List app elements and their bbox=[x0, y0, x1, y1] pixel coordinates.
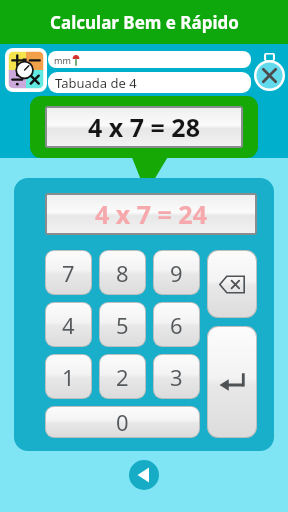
staticText: 8 bbox=[116, 258, 129, 288]
button[interactable]: 2 bbox=[100, 355, 145, 398]
button[interactable]: 1 bbox=[46, 355, 91, 398]
button[interactable]: 3 bbox=[154, 355, 199, 398]
staticText: 9 bbox=[170, 258, 183, 288]
button[interactable]: 9 bbox=[154, 251, 199, 294]
staticText: 0 bbox=[116, 407, 129, 437]
staticText: 1 bbox=[62, 362, 75, 392]
button[interactable]: 0 bbox=[46, 407, 199, 437]
button[interactable]: 8 bbox=[100, 251, 145, 294]
button[interactable]: Stop timer bbox=[253, 51, 286, 92]
button[interactable]: 5 bbox=[100, 303, 145, 346]
button[interactable]: 7 bbox=[46, 251, 91, 294]
staticText: Calcular Bem e Rápido bbox=[50, 11, 239, 34]
button[interactable]: 4 bbox=[46, 303, 91, 346]
staticText: 5 bbox=[116, 310, 129, 340]
staticText: 7 bbox=[62, 258, 75, 288]
button[interactable]: Enter bbox=[208, 327, 256, 437]
button[interactable]: 4 x 7 = 24 bbox=[47, 195, 255, 233]
staticText: Tabuada de 4 bbox=[55, 74, 137, 92]
staticText: 4 bbox=[62, 310, 75, 340]
staticText: 2 bbox=[116, 362, 129, 392]
staticText: 6 bbox=[170, 310, 183, 340]
staticText: 4 x 7 = 24 bbox=[95, 197, 207, 231]
button[interactable]: mm bbox=[48, 51, 251, 68]
button[interactable]: 6 bbox=[154, 303, 199, 346]
button[interactable]: Backspace bbox=[208, 251, 256, 317]
button[interactable]: Calculator app icon bbox=[4, 46, 48, 94]
button[interactable]: Tabuada de 4 bbox=[48, 72, 251, 93]
button[interactable]: Back bbox=[129, 460, 159, 490]
staticText: 4 x 7 = 28 bbox=[88, 110, 200, 144]
staticText: 3 bbox=[170, 362, 183, 392]
staticText: mm bbox=[54, 54, 71, 66]
